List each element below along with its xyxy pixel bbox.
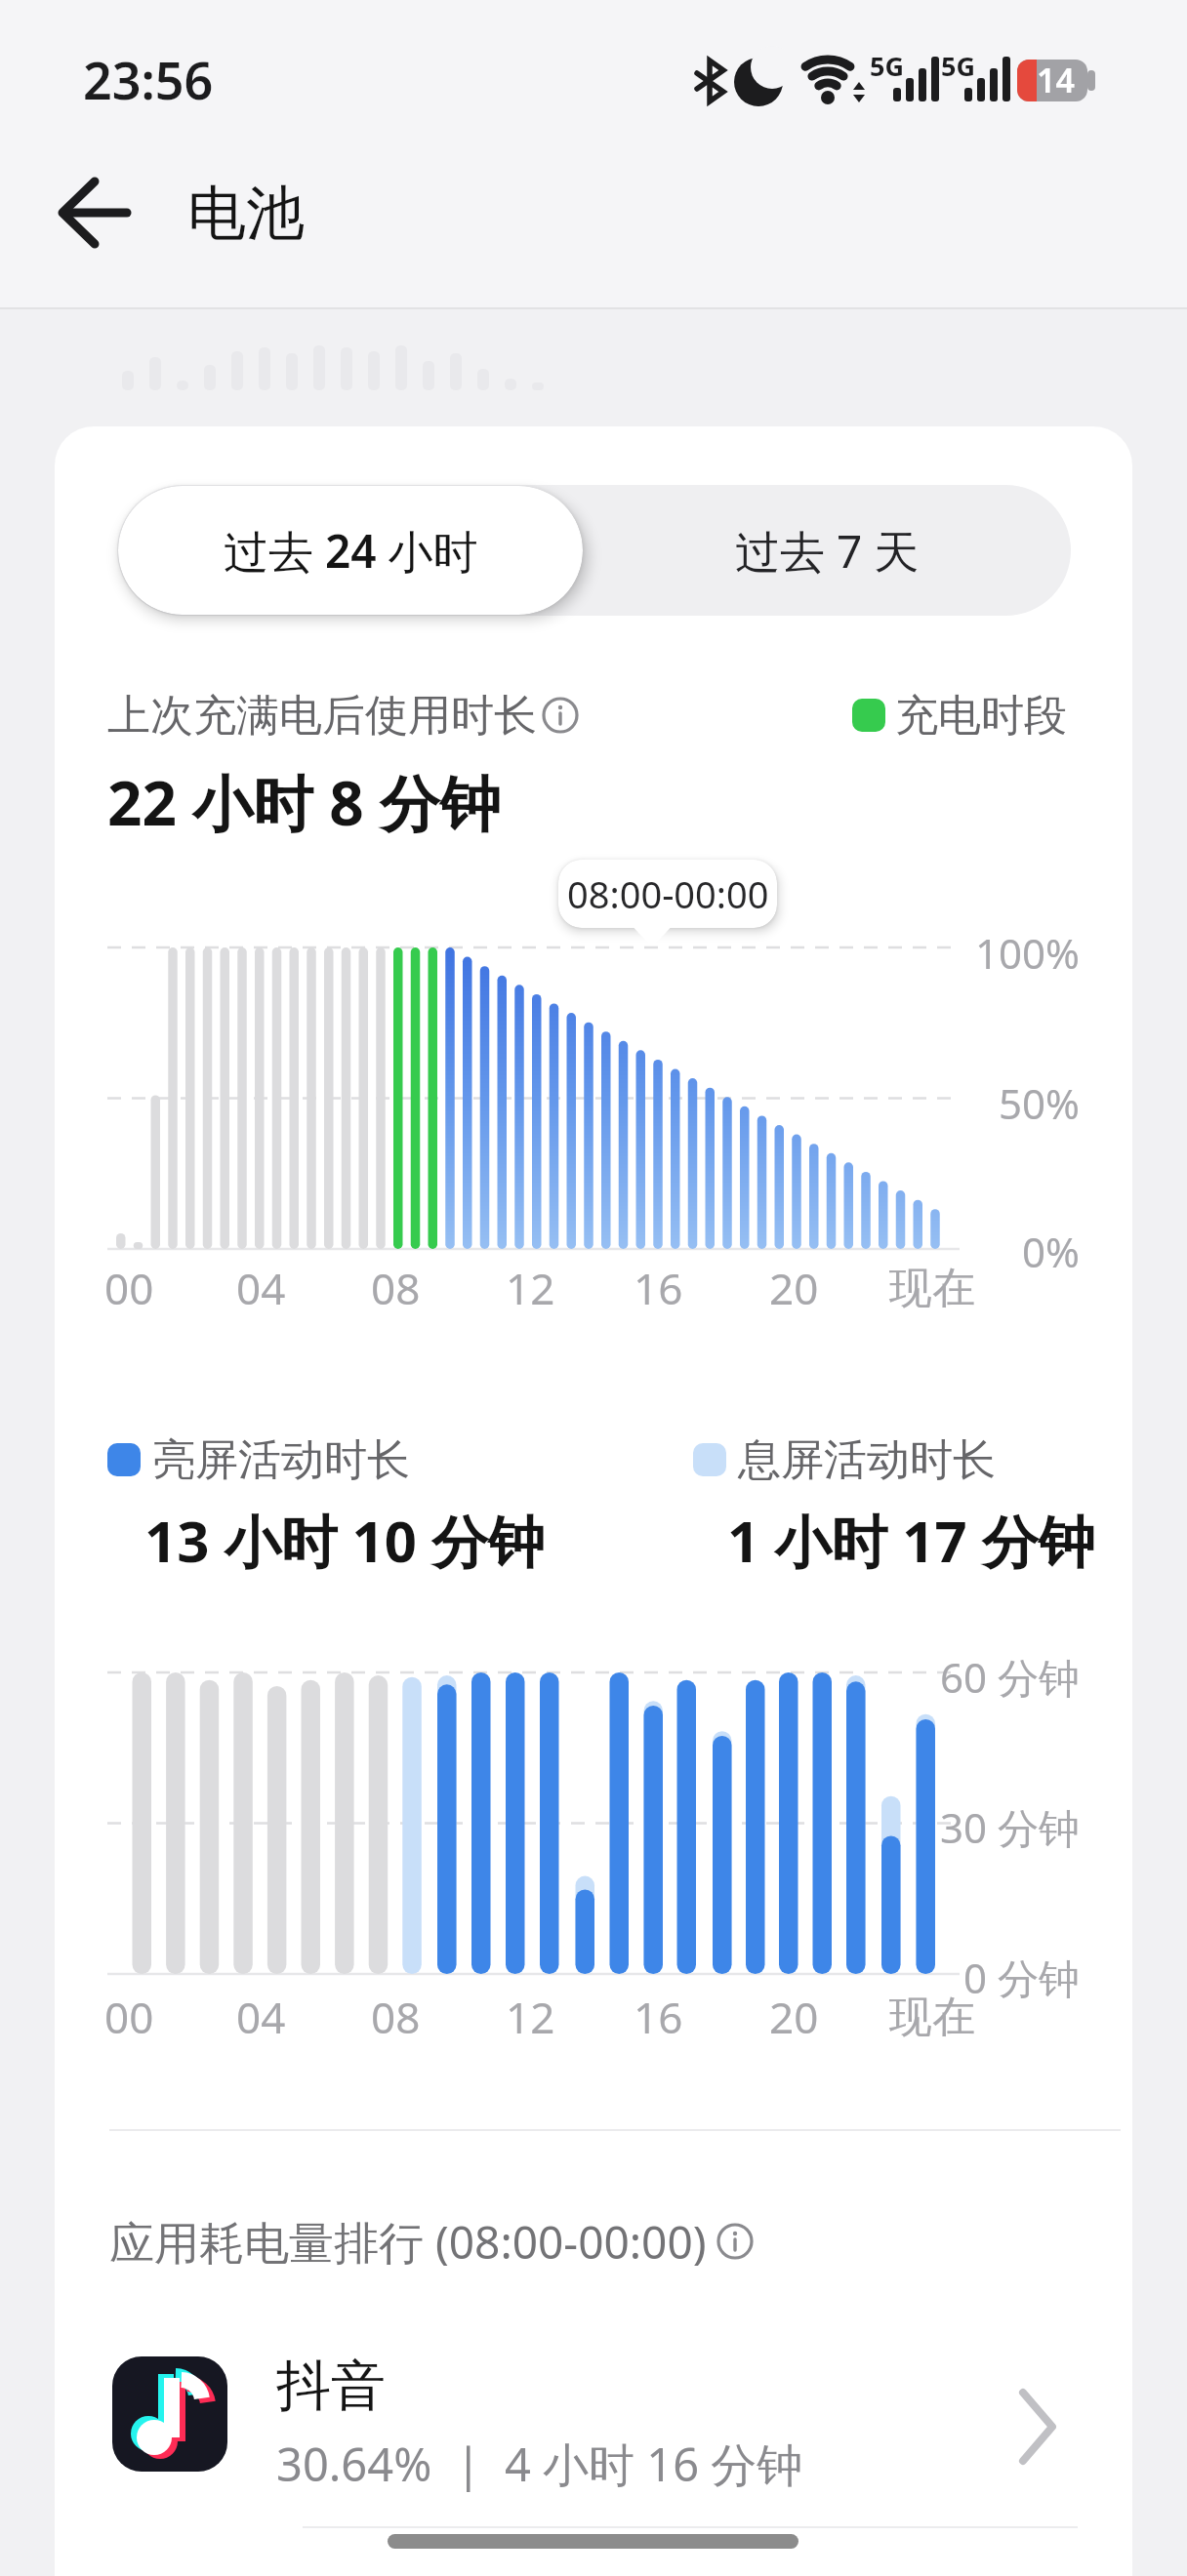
staticText: 5G [941,48,975,84]
staticText: 30 分钟 [940,1799,1080,1855]
staticText: 现在 [889,1262,975,1315]
staticText: 50% [999,1075,1080,1131]
staticText: 00 [104,1988,154,2046]
staticText: 应用耗电量排行 (08:00-00:00) [109,2211,707,2273]
staticText: 23:56 [83,45,214,114]
staticText: 08:00-00:00 [567,868,769,919]
staticText: 5G [870,48,904,84]
staticText: 过去 7 天 [735,520,920,582]
staticText: 0% [1022,1224,1080,1279]
staticText: 04 [236,1259,286,1317]
staticText: 22 小时 8 分钟 [107,761,501,844]
staticText: 电池 [187,177,305,251]
staticText: 00 [104,1259,154,1317]
staticText: 息屏活动时长 [738,1433,996,1487]
staticText: 1 小时 17 分钟 [727,1502,1095,1579]
staticText: 0 分钟 [963,1950,1080,2005]
button[interactable]: 过去 7 天 [583,486,1071,615]
staticText: 08 [371,1988,421,2046]
staticText: 14 [1037,58,1075,102]
staticText: 充电时段 [895,689,1067,743]
staticText: 20 [769,1988,819,2046]
staticText: 30.64% | 4 小时 16 分钟 [276,2433,803,2495]
staticText: 抖音 [276,2352,386,2421]
staticText: 亮屏活动时长 [152,1433,410,1487]
staticText: 上次充满电后使用时长 [107,689,537,743]
staticText: 12 [506,1259,555,1317]
staticText: 现在 [889,1991,975,2044]
staticText: 04 [236,1988,286,2046]
staticText: 12 [506,1988,555,2046]
staticText: 13 小时 10 分钟 [144,1502,545,1579]
staticText: 60 分钟 [940,1649,1080,1705]
staticText: 过去 24 小时 [224,520,478,582]
button[interactable]: 过去 24 小时 [118,486,583,615]
button[interactable] [39,166,146,263]
staticText: 16 [634,1988,683,2046]
button[interactable] [88,2342,1084,2488]
staticText: 16 [634,1259,683,1317]
staticText: 100% [975,925,1080,981]
staticText: 08 [371,1259,421,1317]
staticText: 20 [769,1259,819,1317]
